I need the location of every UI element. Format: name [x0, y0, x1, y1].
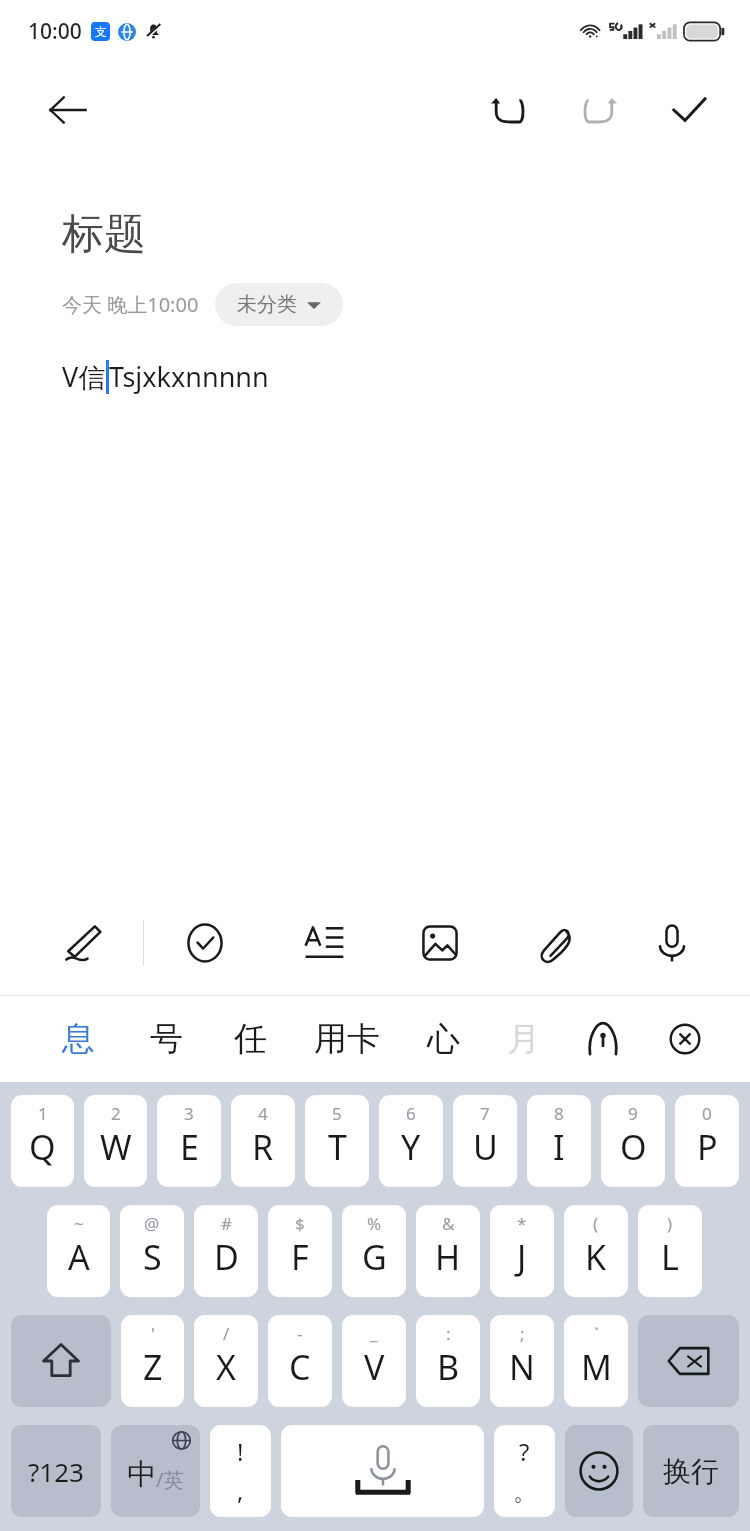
staticText: P — [697, 1124, 718, 1170]
staticText: 支 — [95, 24, 107, 39]
staticText: V — [364, 1344, 385, 1390]
staticText: Tsjxkxnnnnn — [109, 358, 269, 395]
button[interactable]: _ — [342, 1315, 406, 1407]
staticText: 标题 — [62, 208, 146, 261]
button[interactable]: Space — [281, 1425, 484, 1517]
staticText: ( — [593, 1212, 599, 1235]
staticText: 今天 晚上10:00 — [62, 291, 199, 318]
button[interactable]: 换行 — [643, 1425, 739, 1517]
staticText: A — [68, 1234, 90, 1280]
button[interactable]: # — [194, 1205, 258, 1297]
button[interactable]: 未分类 — [215, 283, 343, 326]
button[interactable]: Attach file — [498, 891, 614, 995]
button[interactable]: * — [490, 1205, 554, 1297]
button[interactable]: ` — [564, 1315, 628, 1407]
staticText: & — [442, 1212, 455, 1235]
staticText: U — [473, 1124, 498, 1170]
button[interactable]: 4 — [231, 1095, 295, 1187]
button[interactable]: : — [416, 1315, 480, 1407]
staticText: 未分类 — [237, 292, 297, 317]
staticText: ~ — [74, 1212, 84, 1235]
staticText: W — [100, 1124, 132, 1170]
button[interactable]: 2 — [84, 1095, 147, 1187]
staticText: 8 — [554, 1102, 564, 1125]
button[interactable]: Back — [40, 82, 96, 138]
button[interactable]: 号 — [123, 996, 209, 1082]
staticText: - — [297, 1322, 303, 1345]
staticText: 号 — [150, 1018, 183, 1060]
button[interactable]: Voice input — [614, 891, 730, 995]
staticText: @ — [144, 1212, 160, 1235]
staticText: ) — [667, 1212, 673, 1235]
staticText: D — [214, 1234, 239, 1280]
staticText: 2 — [111, 1102, 121, 1125]
button[interactable]: & — [416, 1205, 480, 1297]
button[interactable]: 息 — [34, 996, 123, 1082]
button[interactable]: ; — [490, 1315, 554, 1407]
staticText: I — [553, 1124, 565, 1170]
staticText: L — [661, 1234, 679, 1280]
staticText: F — [291, 1234, 309, 1280]
staticText: 4 — [258, 1102, 268, 1125]
staticText: 7 — [480, 1102, 490, 1125]
staticText: 10:00 — [28, 17, 82, 46]
button[interactable]: 1 — [11, 1095, 74, 1187]
staticText: ! — [237, 1435, 244, 1468]
button[interactable]: 用卡 — [291, 996, 402, 1082]
button[interactable]: Undo — [478, 79, 540, 141]
button[interactable]: 任 — [209, 996, 291, 1082]
staticText: ?123 — [28, 1454, 84, 1489]
button[interactable]: Handwriting — [20, 891, 143, 995]
button[interactable]: Redo — [568, 79, 630, 141]
button[interactable]: 心 — [402, 996, 484, 1082]
button[interactable]: ( — [564, 1205, 628, 1297]
staticText: C — [289, 1344, 311, 1390]
button[interactable]: Close candidates — [644, 996, 726, 1082]
button[interactable]: Done — [658, 79, 720, 141]
button[interactable]: 7 — [453, 1095, 517, 1187]
staticText: 9 — [628, 1102, 638, 1125]
staticText: J — [517, 1234, 527, 1280]
button[interactable]: 9 — [601, 1095, 665, 1187]
button[interactable]: Backspace — [638, 1315, 739, 1407]
staticText: Y — [401, 1124, 421, 1170]
button[interactable]: 8 — [527, 1095, 591, 1187]
button[interactable]: Shift — [11, 1315, 111, 1407]
button[interactable]: 3 — [157, 1095, 221, 1187]
staticText: 换行 — [663, 1454, 719, 1489]
button[interactable]: ? — [494, 1425, 555, 1517]
button[interactable]: Text style — [266, 891, 382, 995]
staticText: T — [328, 1124, 347, 1170]
button[interactable]: Insert image — [382, 891, 498, 995]
staticText: 1 — [38, 1102, 48, 1125]
button[interactable]: ~ — [47, 1205, 110, 1297]
staticText: : — [446, 1322, 451, 1345]
button[interactable]: - — [268, 1315, 332, 1407]
button[interactable]: $ — [268, 1205, 332, 1297]
button[interactable]: 0 — [675, 1095, 739, 1187]
button[interactable]: ) — [638, 1205, 702, 1297]
button[interactable]: Checklist — [144, 891, 266, 995]
staticText: 。 — [513, 1477, 537, 1507]
button[interactable]: ?123 — [11, 1425, 101, 1517]
staticText: 3 — [184, 1102, 194, 1125]
button[interactable]: Switch Chinese English — [111, 1425, 200, 1517]
button[interactable]: ' — [121, 1315, 184, 1407]
button[interactable]: @ — [120, 1205, 184, 1297]
staticText: S — [143, 1234, 162, 1280]
button[interactable]: Handwriting input — [562, 996, 644, 1082]
button[interactable]: 5 — [305, 1095, 369, 1187]
staticText: B — [437, 1344, 460, 1390]
button[interactable]: % — [342, 1205, 406, 1297]
staticText: 心 — [427, 1018, 460, 1060]
staticText: /英 — [156, 1466, 184, 1493]
staticText: ; — [520, 1322, 525, 1345]
button[interactable]: Emoji — [565, 1425, 633, 1517]
button[interactable]: / — [194, 1315, 258, 1407]
staticText: 用卡 — [314, 1018, 380, 1060]
button[interactable]: 6 — [379, 1095, 443, 1187]
staticText: 5 — [332, 1102, 342, 1125]
button[interactable]: ! — [210, 1425, 271, 1517]
staticText: R — [252, 1124, 274, 1170]
button[interactable]: 月 — [484, 996, 562, 1082]
